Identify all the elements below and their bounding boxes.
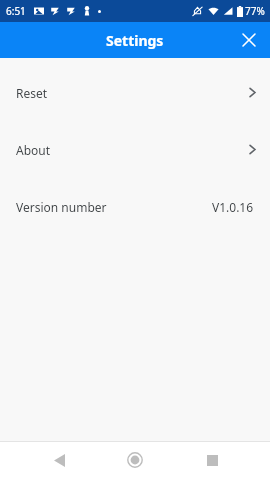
button[interactable]: Reset (0, 64, 270, 121)
staticText: 6:51 (6, 4, 26, 18)
button[interactable]: About (0, 121, 270, 178)
staticText: 77% (245, 4, 265, 18)
staticText: Reset (16, 85, 48, 101)
staticText: About (16, 142, 51, 158)
button[interactable]: Back (41, 442, 77, 478)
button[interactable]: Close (234, 25, 264, 55)
staticText: V1.0.16 (212, 199, 254, 215)
staticText: Version number (16, 199, 107, 215)
button[interactable]: Home (117, 442, 153, 478)
staticText: Settings (106, 31, 164, 50)
button[interactable]: Recents (194, 442, 230, 478)
